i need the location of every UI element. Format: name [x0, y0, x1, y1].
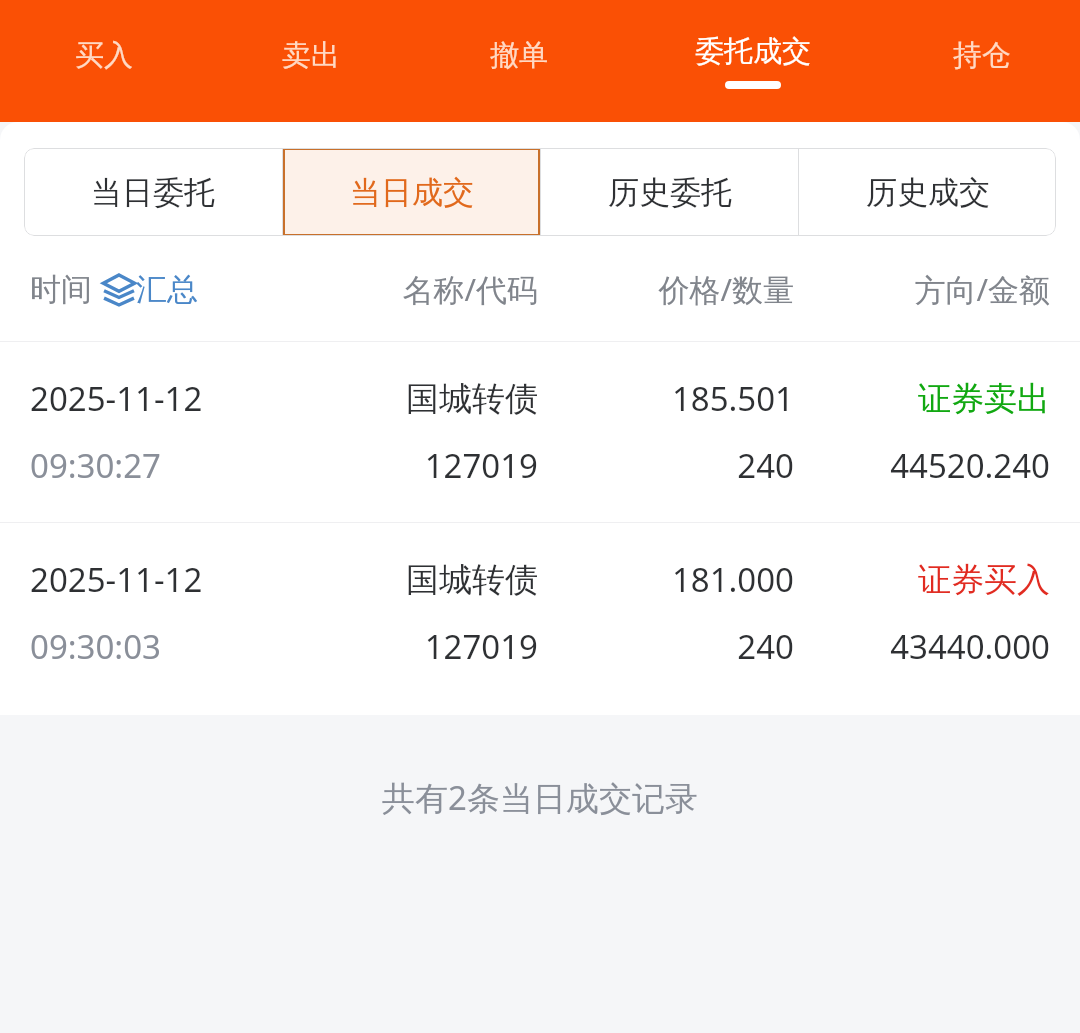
staticText: 当日委托 — [91, 173, 215, 212]
staticText: 09:30:27 — [30, 443, 294, 488]
staticText: 44520.240 — [794, 443, 1050, 488]
button[interactable]: 历史成交 — [799, 148, 1056, 236]
button[interactable]: 2025-11-12 — [0, 523, 1080, 703]
staticText: 持仓 — [953, 37, 1011, 74]
staticText: 撤单 — [490, 37, 548, 74]
button[interactable]: 持仓 — [883, 0, 1080, 122]
button[interactable]: 撤单 — [415, 0, 623, 122]
staticText: 09:30:03 — [30, 624, 294, 669]
button[interactable]: 委托成交 — [623, 0, 883, 122]
button[interactable]: 汇总 — [102, 270, 198, 309]
staticText: 国城转债 — [294, 378, 538, 420]
staticText: 时间 — [30, 270, 92, 309]
button[interactable]: 当日委托 — [24, 148, 282, 236]
staticText: 181.000 — [538, 557, 794, 602]
staticText: 240 — [538, 624, 794, 669]
button[interactable]: 卖出 — [207, 0, 415, 122]
button[interactable]: 2025-11-12 — [0, 342, 1080, 522]
staticText: 2025-11-12 — [30, 376, 294, 421]
staticText: 共有2条当日成交记录 — [382, 775, 698, 820]
staticText: 汇总 — [136, 270, 198, 309]
staticText: 名称/代码 — [294, 268, 538, 310]
staticText: 43440.000 — [794, 624, 1050, 669]
staticText: 当日成交 — [350, 173, 474, 212]
staticText: 委托成交 — [695, 33, 811, 70]
staticText: 2025-11-12 — [30, 557, 294, 602]
staticText: 国城转债 — [294, 559, 538, 601]
staticText: 证券买入 — [794, 559, 1050, 601]
button[interactable]: 当日成交 — [283, 148, 540, 236]
staticText: 127019 — [294, 443, 538, 488]
staticText: 价格/数量 — [538, 268, 794, 310]
staticText: 历史委托 — [608, 173, 732, 212]
staticText: 185.501 — [538, 376, 794, 421]
staticText: 证券卖出 — [794, 378, 1050, 420]
staticText: 方向/金额 — [794, 268, 1050, 310]
staticText: 卖出 — [282, 37, 340, 74]
button[interactable]: 买入 — [0, 0, 207, 122]
staticText: 买入 — [75, 37, 133, 74]
staticText: 历史成交 — [866, 173, 990, 212]
staticText: 240 — [538, 443, 794, 488]
button[interactable]: 历史委托 — [541, 148, 798, 236]
staticText: 127019 — [294, 624, 538, 669]
